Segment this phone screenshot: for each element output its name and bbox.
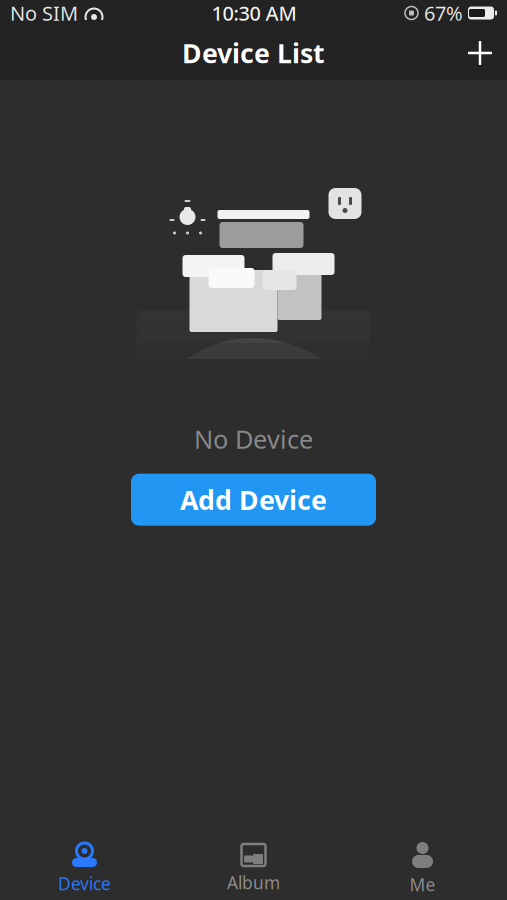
staticText: No SIM — [10, 0, 78, 26]
button[interactable]: Me — [338, 838, 507, 900]
staticText: Album — [227, 871, 280, 894]
button[interactable]: Add Device — [453, 26, 507, 80]
staticText: 10:30 AM — [211, 0, 296, 26]
staticText: Device List — [182, 35, 325, 71]
staticText: Add Device — [180, 482, 327, 517]
staticText: No Device — [194, 422, 313, 456]
staticText: Device — [58, 872, 111, 895]
staticText: 67% — [424, 0, 463, 26]
button[interactable]: Add Device — [131, 474, 376, 526]
button[interactable]: Device — [0, 838, 169, 900]
staticText: Me — [409, 873, 435, 896]
button[interactable]: Album — [169, 838, 338, 900]
